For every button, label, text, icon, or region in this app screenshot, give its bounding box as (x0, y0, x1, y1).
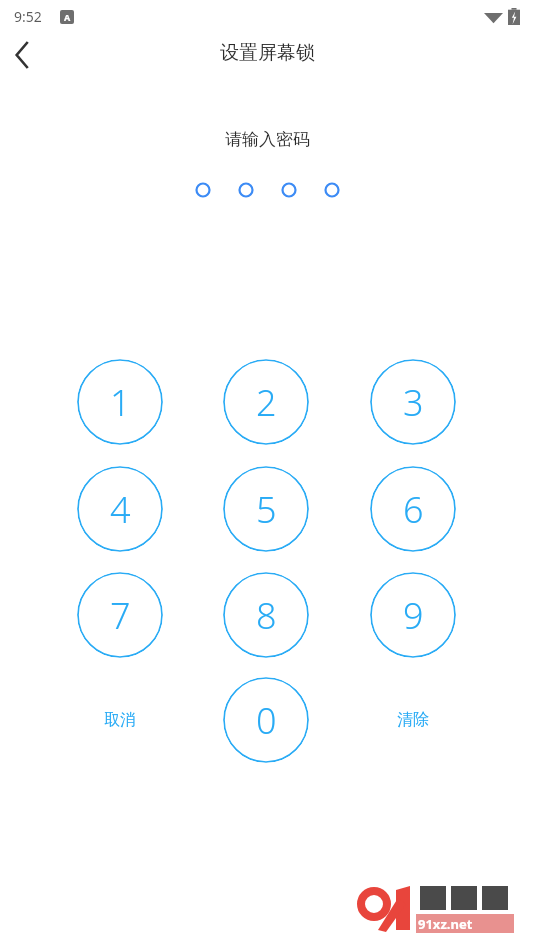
staticText: 取消 (104, 710, 136, 730)
button[interactable]: 9 (370, 572, 456, 658)
staticText: 0 (256, 696, 277, 745)
button[interactable]: 取消 (75, 695, 165, 745)
button[interactable]: 7 (77, 572, 163, 658)
staticText: 设置屏幕锁 (220, 41, 315, 65)
button[interactable]: 0 (223, 677, 309, 763)
button[interactable]: 4 (77, 466, 163, 552)
button[interactable]: 2 (223, 359, 309, 445)
staticText: 请输入密码 (225, 129, 310, 150)
button[interactable]: Back (0, 33, 44, 77)
staticText: 4 (110, 485, 131, 534)
staticText: 91xz.net (418, 915, 473, 933)
staticText: 6 (403, 485, 424, 534)
staticText: 9:52 (14, 7, 42, 26)
staticText: 3 (403, 378, 424, 427)
staticText: 7 (110, 591, 131, 640)
staticText: 8 (256, 591, 277, 640)
button[interactable]: 8 (223, 572, 309, 658)
button[interactable]: 1 (77, 359, 163, 445)
staticText: A (64, 11, 71, 23)
staticText: 9 (403, 591, 424, 640)
button[interactable]: 6 (370, 466, 456, 552)
staticText: 1 (110, 378, 131, 427)
button[interactable]: 3 (370, 359, 456, 445)
staticText: 5 (256, 485, 277, 534)
staticText: 2 (256, 378, 277, 427)
button[interactable]: 清除 (368, 695, 458, 745)
button[interactable]: 5 (223, 466, 309, 552)
staticText: 清除 (397, 710, 429, 730)
